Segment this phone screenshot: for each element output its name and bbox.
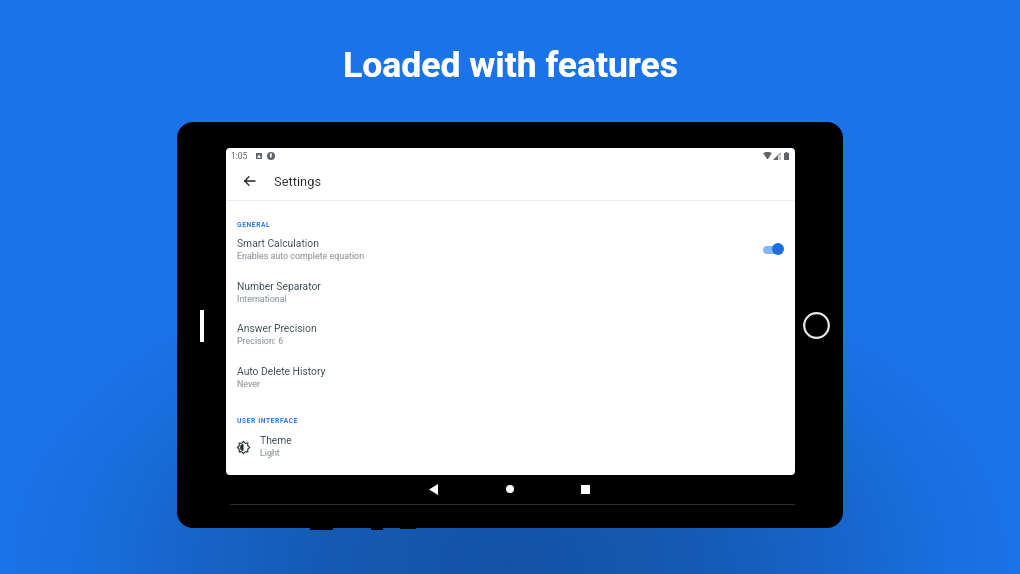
staticText: Auto Delete History bbox=[237, 365, 326, 377]
staticText: USER INTERFACE bbox=[237, 417, 299, 425]
staticText: GENERAL bbox=[237, 221, 271, 229]
staticText: 1:05 bbox=[231, 151, 248, 161]
staticText: Settings bbox=[274, 174, 322, 189]
staticText: Loaded with features bbox=[343, 44, 678, 86]
button[interactable]: Home bbox=[506, 485, 514, 493]
staticText: Never bbox=[237, 379, 260, 389]
button[interactable]: Back bbox=[233, 165, 265, 197]
button[interactable]: Smart Calculation bbox=[226, 231, 795, 267]
staticText: Precision: 6 bbox=[237, 336, 284, 346]
staticText: Theme bbox=[260, 434, 292, 446]
button[interactable]: Answer Precision bbox=[226, 316, 795, 352]
staticText: Answer Precision bbox=[237, 322, 317, 334]
button[interactable]: Theme bbox=[226, 428, 795, 464]
button[interactable]: Auto Delete History bbox=[226, 359, 795, 395]
staticText: Light bbox=[260, 448, 280, 458]
button[interactable]: Number Separator bbox=[226, 274, 795, 310]
button[interactable]: Smart Calculation, on bbox=[763, 243, 783, 256]
staticText: Smart Calculation bbox=[237, 237, 319, 249]
staticText: International bbox=[237, 294, 287, 304]
staticText: Enables auto complete equation bbox=[237, 251, 365, 261]
staticText: Number Separator bbox=[237, 280, 321, 292]
button[interactable]: Back bbox=[429, 484, 438, 495]
